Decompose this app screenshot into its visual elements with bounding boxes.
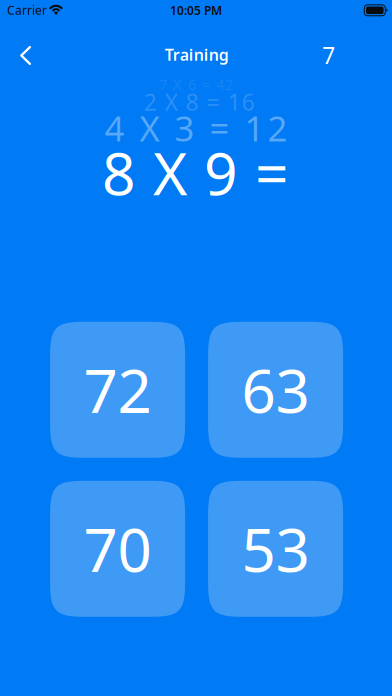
staticText: 7 [322, 40, 335, 70]
button[interactable]: 53 [208, 481, 343, 617]
button[interactable]: 72 [50, 322, 185, 458]
staticText: 72 [84, 350, 152, 430]
staticText: 63 [242, 350, 310, 430]
staticText: 53 [242, 509, 310, 589]
staticText: Carrier [7, 2, 47, 18]
staticText: 70 [84, 509, 152, 589]
button[interactable]: 70 [50, 481, 185, 617]
staticText: Training [165, 44, 229, 65]
button[interactable]: Back [4, 33, 48, 77]
staticText: 8 X 9 = [102, 133, 289, 211]
staticText: 10:05 PM [170, 2, 222, 18]
staticText: 2 X 8 = 16 [144, 87, 255, 117]
button[interactable]: 63 [208, 322, 343, 458]
staticText: 7 X 6 = 42 [159, 74, 233, 94]
staticText: 4 X 3 = 12 [104, 105, 287, 151]
button[interactable]: 7 [307, 33, 351, 77]
